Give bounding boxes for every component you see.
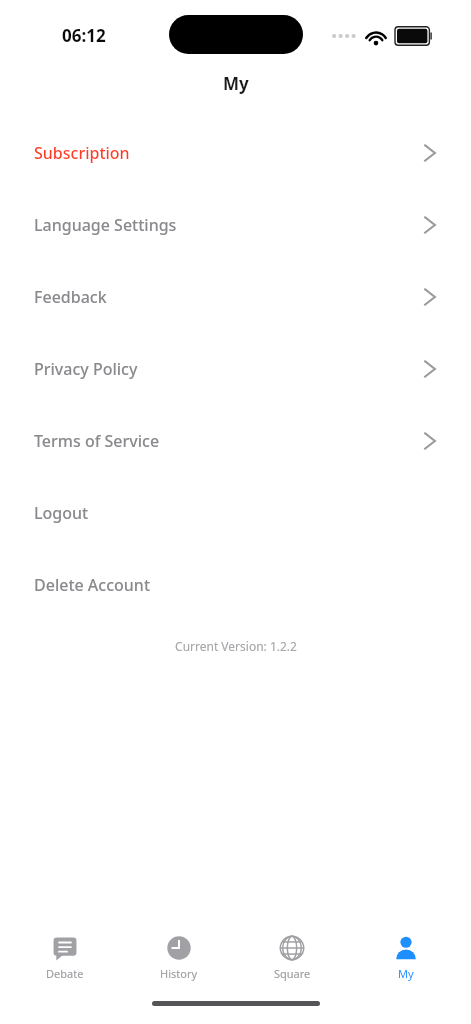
other: Debate bbox=[52, 935, 78, 961]
staticText: Language Settings bbox=[34, 214, 177, 236]
staticText: Square bbox=[274, 966, 311, 981]
button[interactable]: Privacy Policy bbox=[0, 333, 471, 405]
staticText: My bbox=[223, 72, 249, 95]
other: History bbox=[166, 935, 192, 961]
staticText: My bbox=[398, 966, 414, 981]
staticText: Delete Account bbox=[34, 574, 151, 596]
button[interactable]: Language Settings bbox=[0, 189, 471, 261]
button[interactable]: My bbox=[358, 931, 454, 985]
staticText: Feedback bbox=[34, 286, 107, 308]
staticText: Logout bbox=[34, 502, 89, 524]
staticText: Subscription bbox=[34, 142, 130, 164]
button[interactable]: Feedback bbox=[0, 261, 471, 333]
staticText: 06:12 bbox=[62, 24, 106, 47]
button[interactable]: History bbox=[131, 931, 227, 985]
button[interactable]: Subscription bbox=[0, 117, 471, 189]
button[interactable]: Debate bbox=[17, 931, 113, 985]
button[interactable]: Delete Account bbox=[0, 549, 471, 621]
staticText: Terms of Service bbox=[34, 430, 160, 452]
staticText: Debate bbox=[46, 966, 84, 981]
staticText: Privacy Policy bbox=[34, 358, 138, 380]
staticText: Current Version: 1.2.2 bbox=[175, 638, 297, 654]
staticText: History bbox=[160, 966, 198, 981]
other: My bbox=[393, 935, 419, 961]
other: Square bbox=[279, 935, 305, 961]
button[interactable]: Square bbox=[244, 931, 340, 985]
button[interactable]: Terms of Service bbox=[0, 405, 471, 477]
button[interactable]: Logout bbox=[0, 477, 471, 549]
